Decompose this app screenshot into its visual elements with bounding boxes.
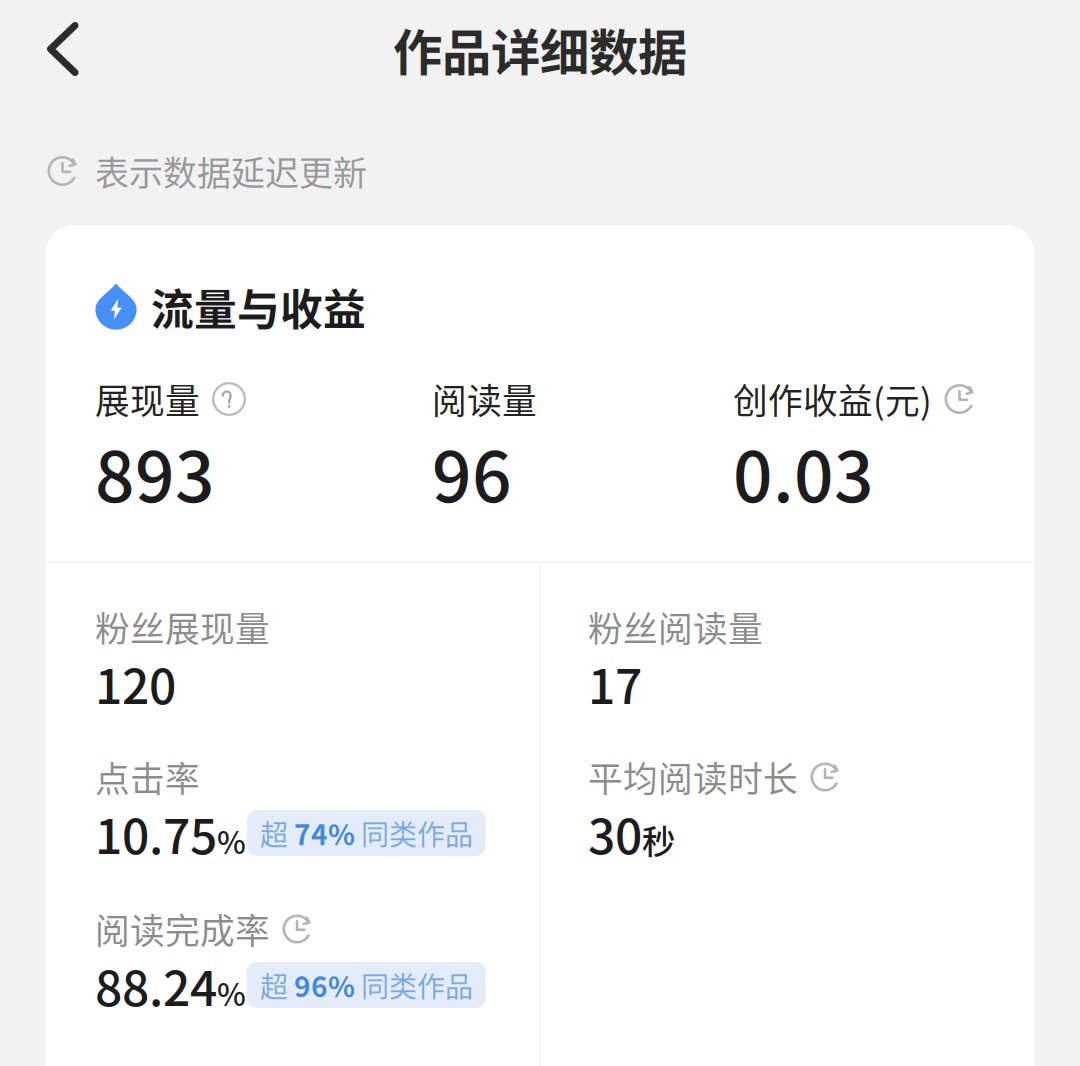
staticText: 流量与收益 <box>151 276 366 338</box>
staticText: 创作收益(元) <box>733 374 932 424</box>
staticText: 同类作品 <box>355 813 473 853</box>
staticText: 0.03 <box>733 422 874 522</box>
staticText: 秒 <box>642 815 675 864</box>
staticText: % <box>217 970 246 1015</box>
staticText: 粉丝阅读量 <box>588 602 763 652</box>
staticText: 893 <box>95 422 215 522</box>
staticText: 120 <box>95 648 176 718</box>
staticText: 10.75 <box>95 798 217 868</box>
button[interactable]: Back <box>0 0 126 101</box>
staticText: 88.24 <box>95 950 217 1020</box>
staticText: 30 <box>588 798 642 868</box>
staticText: 粉丝展现量 <box>95 602 270 652</box>
staticText: 平均阅读时长 <box>588 752 798 802</box>
staticText: 同类作品 <box>355 965 473 1005</box>
staticText: 表示数据延迟更新 <box>95 146 367 196</box>
staticText: 展现量 <box>95 374 200 424</box>
staticText: 74% <box>294 813 355 853</box>
staticText: 点击率 <box>95 752 200 802</box>
staticText: % <box>217 818 246 863</box>
staticText: 作品详细数据 <box>393 13 687 85</box>
staticText: 超 <box>260 965 294 1005</box>
staticText: 96% <box>294 965 355 1005</box>
staticText: 96 <box>432 422 512 522</box>
staticText: 阅读量 <box>432 374 537 424</box>
staticText: 阅读完成率 <box>95 904 270 954</box>
staticText: 17 <box>588 648 642 718</box>
staticText: 超 <box>260 813 294 853</box>
